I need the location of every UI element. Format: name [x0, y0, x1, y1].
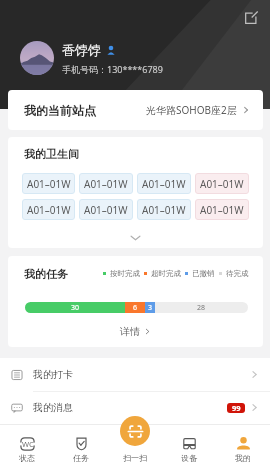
button[interactable]: Expand list: [8, 226, 263, 248]
staticText: 我的当前站点: [24, 103, 96, 118]
button[interactable]: 任务: [54, 424, 108, 464]
button[interactable]: A01–01W: [79, 199, 133, 220]
button[interactable]: 我的: [216, 424, 270, 464]
button[interactable]: 我的当前站点: [8, 90, 263, 130]
button[interactable]: A01–01W: [195, 173, 249, 194]
staticText: 我的打卡: [33, 368, 73, 381]
staticText: 99: [232, 403, 241, 413]
staticText: 28: [197, 303, 206, 313]
button[interactable]: 我的打卡: [0, 358, 270, 391]
staticText: 待完成: [226, 269, 249, 278]
button[interactable]: 扫一扫: [108, 424, 162, 464]
staticText: 香饽饽: [62, 42, 101, 58]
staticText: 按时完成: [110, 269, 140, 278]
staticText: A01–01W: [142, 177, 186, 191]
staticText: 3: [148, 303, 153, 313]
staticText: 手机号码：130****6789: [62, 63, 163, 75]
button[interactable]: 设备: [162, 424, 216, 464]
staticText: 任务: [73, 453, 89, 463]
staticText: WC: [22, 439, 34, 449]
button[interactable]: A01–01W: [195, 199, 249, 220]
staticText: A01–01W: [200, 203, 244, 217]
staticText: A01–01W: [84, 203, 128, 217]
button[interactable]: A01–01W: [22, 199, 75, 220]
button[interactable]: A01–01W: [22, 173, 75, 194]
staticText: 我的卫生间: [24, 147, 79, 161]
button[interactable]: Edit profile: [239, 6, 263, 30]
button[interactable]: WC: [0, 424, 54, 464]
button[interactable]: A01–01W: [137, 199, 191, 220]
staticText: A01–01W: [27, 177, 71, 191]
button[interactable]: A01–01W: [137, 173, 191, 194]
staticText: 6: [133, 303, 138, 313]
staticText: A01–01W: [200, 177, 244, 191]
staticText: A01–01W: [142, 203, 186, 217]
staticText: 状态: [19, 453, 35, 463]
staticText: 30: [71, 303, 80, 313]
staticText: 详情: [120, 325, 140, 338]
staticText: 光华路SOHOB座2层: [146, 103, 237, 117]
staticText: 我的: [235, 453, 251, 463]
staticText: A01–01W: [84, 177, 128, 191]
staticText: 超时完成: [151, 269, 181, 278]
button[interactable]: 我的消息: [0, 391, 270, 424]
button[interactable]: A01–01W: [79, 173, 133, 194]
staticText: A01–01W: [27, 203, 71, 217]
staticText: 扫一扫: [123, 453, 147, 463]
staticText: 我的任务: [24, 267, 68, 281]
button[interactable]: 详情: [8, 320, 263, 342]
staticText: 我的消息: [33, 401, 73, 414]
staticText: 已撤销: [192, 269, 215, 278]
staticText: 设备: [181, 453, 197, 463]
